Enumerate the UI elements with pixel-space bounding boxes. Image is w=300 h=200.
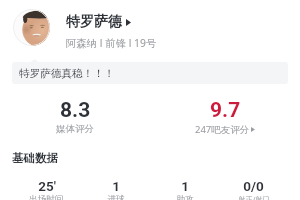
staticText: 247吧友评分 [195,123,250,136]
button[interactable]: Player avatar [13,9,50,46]
staticText: 0/0 [243,178,264,194]
button[interactable]: 1 [81,178,150,200]
staticText: 进球 [107,194,125,200]
staticText: 1 [181,178,189,194]
staticText: 射正/射门 [238,194,270,200]
staticText: 阿森纳 l 前锋 l 19号 [66,36,157,50]
staticText: 特罗萨德 [66,13,122,31]
button[interactable]: 8.3 [0,98,150,135]
staticText: 出场时间 [29,194,64,200]
button[interactable]: 9.7 [150,98,300,136]
staticText: 1 [112,178,120,194]
staticText: 8.3 [60,98,91,123]
staticText: 25' [38,178,56,194]
button[interactable]: 0/0 [219,178,288,200]
button[interactable]: 25' [12,178,81,200]
staticText: 助攻 [176,194,194,200]
button[interactable]: 特罗萨德真稳！！！ [12,62,288,84]
staticText: 媒体评分 [56,123,94,135]
staticText: 9.7 [210,98,241,123]
staticText: 特罗萨德真稳！！！ [19,67,115,80]
button[interactable]: 1 [150,178,219,200]
button[interactable]: 特罗萨德 [66,13,131,31]
staticText: 基础数据 [12,151,58,165]
